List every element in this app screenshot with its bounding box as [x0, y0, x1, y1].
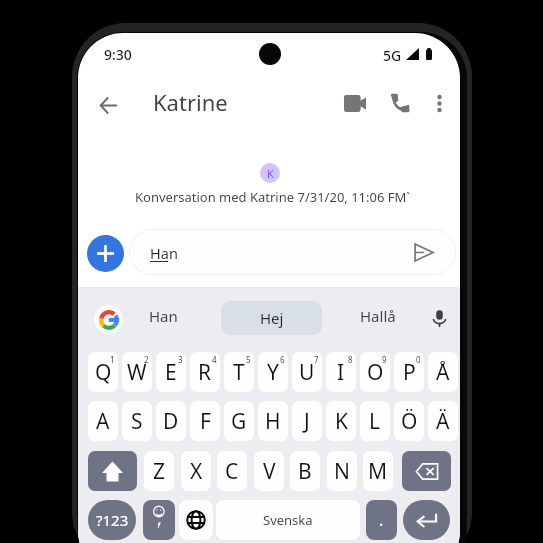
staticText: Ö	[401, 407, 418, 436]
staticText: Y	[267, 358, 279, 387]
button[interactable]: Video call	[333, 81, 377, 125]
button[interactable]: Å	[428, 352, 458, 392]
staticText: 8	[348, 354, 353, 365]
staticText: 7	[314, 354, 319, 365]
staticText: G	[231, 407, 247, 436]
button[interactable]: O	[360, 352, 390, 392]
button[interactable]: M	[363, 451, 393, 491]
staticText: 5	[246, 354, 251, 365]
button[interactable]: J	[292, 401, 322, 441]
button[interactable]: W	[122, 352, 152, 392]
staticText: W	[127, 358, 147, 387]
staticText: E	[165, 358, 177, 387]
staticText: Q	[95, 358, 112, 387]
button[interactable]: I	[326, 352, 356, 392]
staticText: 0	[416, 354, 421, 365]
staticText: ?123	[96, 510, 129, 530]
button[interactable]: Y	[258, 352, 288, 392]
staticText: I	[337, 358, 345, 387]
staticText: C	[225, 457, 239, 486]
staticText: .	[379, 509, 384, 531]
button[interactable]: U	[292, 352, 322, 392]
staticText: X	[190, 457, 203, 486]
staticText: 9:30	[104, 45, 132, 64]
button[interactable]: Ö	[394, 401, 424, 441]
staticText: Konversation med Katrine 7/31/20, 11:06 …	[135, 188, 410, 206]
button[interactable]: Emoji	[143, 500, 175, 540]
button[interactable]: Enter	[403, 500, 450, 540]
button[interactable]: C	[217, 451, 247, 491]
staticText: T	[233, 358, 245, 387]
button[interactable]: ?123	[88, 500, 136, 540]
staticText: Katrine	[153, 87, 228, 117]
staticText: H	[265, 407, 281, 436]
button[interactable]: Z	[144, 451, 174, 491]
staticText: V	[263, 457, 276, 486]
staticText: K	[267, 166, 274, 181]
button[interactable]: H	[258, 401, 288, 441]
staticText: L	[369, 407, 381, 436]
button[interactable]: Ä	[428, 401, 458, 441]
staticText: Svenska	[263, 511, 313, 529]
staticText: 1	[110, 354, 115, 365]
button[interactable]: R	[190, 352, 220, 392]
button[interactable]: Call	[378, 81, 422, 125]
staticText: K	[335, 407, 348, 436]
staticText: Z	[153, 457, 166, 486]
button[interactable]: Change language	[179, 500, 213, 540]
staticText: M	[368, 457, 388, 486]
button[interactable]: N	[327, 451, 357, 491]
staticText: O	[367, 358, 384, 387]
staticText: Ä	[436, 407, 450, 436]
button[interactable]: D	[156, 401, 186, 441]
button[interactable]: A	[88, 401, 118, 441]
button[interactable]: V	[254, 451, 284, 491]
button[interactable]: K	[326, 401, 356, 441]
button[interactable]: Han	[149, 306, 178, 326]
button[interactable]: Backspace	[402, 451, 451, 491]
staticText: P	[403, 358, 416, 387]
button[interactable]: Back	[86, 83, 130, 127]
button[interactable]: Hallå	[360, 306, 396, 326]
staticText: B	[298, 457, 312, 486]
button[interactable]: Q	[88, 352, 118, 392]
button[interactable]: Voice input	[426, 305, 452, 331]
staticText: 6	[280, 354, 285, 365]
button[interactable]: Send	[407, 236, 439, 268]
staticText: Hej	[260, 308, 284, 328]
button[interactable]: S	[122, 401, 152, 441]
button[interactable]: Svenska	[216, 500, 360, 540]
staticText: F	[200, 407, 211, 436]
staticText: J	[304, 407, 310, 436]
button[interactable]: .	[366, 500, 397, 540]
button[interactable]: Hej	[221, 301, 322, 335]
staticText: S	[131, 407, 143, 436]
staticText: R	[198, 358, 212, 387]
staticText: 9	[382, 354, 387, 365]
button[interactable]: Shift	[88, 451, 137, 491]
staticText: D	[163, 407, 179, 436]
button[interactable]: E	[156, 352, 186, 392]
staticText: Han	[150, 243, 178, 263]
staticText: Å	[436, 358, 450, 387]
button[interactable]: T	[224, 352, 254, 392]
button[interactable]: Add attachment	[87, 235, 124, 272]
staticText: U	[299, 358, 315, 387]
button[interactable]: B	[290, 451, 320, 491]
button[interactable]: More options	[417, 81, 460, 125]
button[interactable]: L	[360, 401, 390, 441]
staticText: N	[334, 457, 350, 486]
button[interactable]: G	[224, 401, 254, 441]
staticText: 4	[212, 354, 217, 365]
staticText: 3	[178, 354, 183, 365]
button[interactable]: X	[181, 451, 211, 491]
button[interactable]: Han	[130, 230, 455, 274]
staticText: A	[96, 407, 110, 436]
staticText: 5G	[383, 46, 402, 65]
button[interactable]: F	[190, 401, 220, 441]
button[interactable]: P	[394, 352, 424, 392]
staticText: 2	[144, 354, 149, 365]
